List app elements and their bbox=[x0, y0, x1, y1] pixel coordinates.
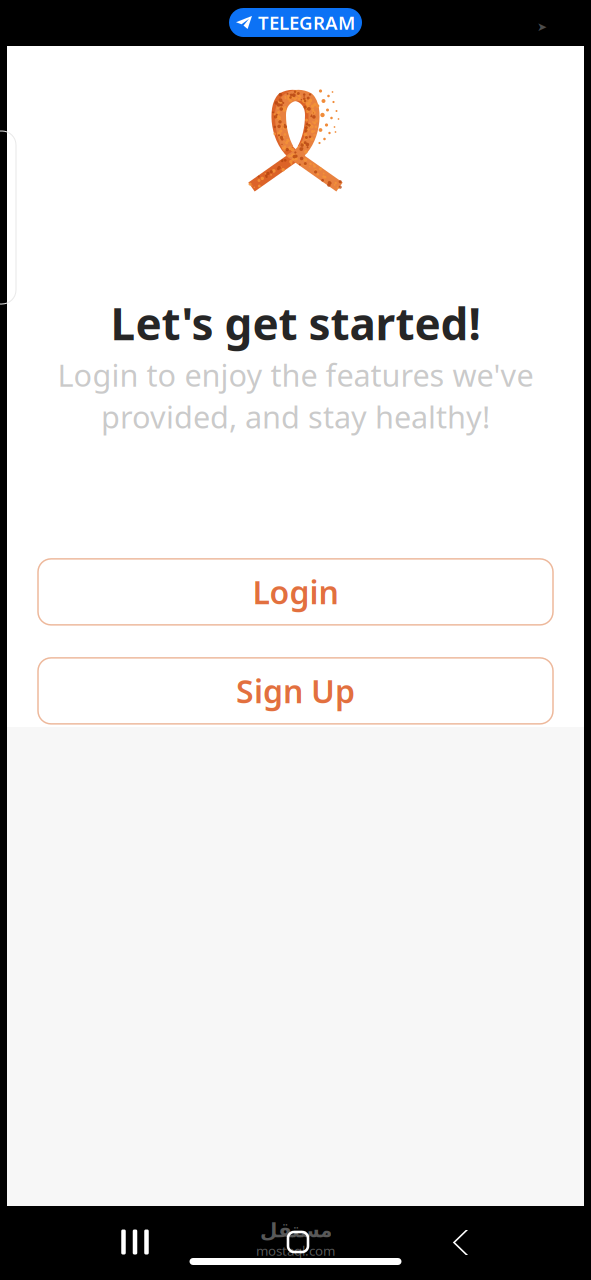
staticText: Sign Up bbox=[236, 670, 355, 712]
button[interactable]: Login bbox=[38, 559, 553, 625]
staticText: mostaql.com bbox=[256, 1242, 335, 1259]
button[interactable]: Home bbox=[253, 1223, 343, 1261]
staticText: Let's get started! bbox=[110, 294, 480, 352]
staticText: provided, and stay healthy! bbox=[101, 396, 490, 437]
button[interactable]: Recent apps bbox=[90, 1223, 180, 1261]
button[interactable]: Back bbox=[416, 1223, 506, 1261]
staticText: ➤ bbox=[537, 20, 547, 34]
staticText: مستقل bbox=[259, 1219, 331, 1242]
staticText: TELEGRAM bbox=[258, 10, 355, 35]
button[interactable]: TELEGRAM bbox=[229, 8, 362, 37]
staticText: Login to enjoy the features we've bbox=[57, 354, 533, 395]
button[interactable]: Sign Up bbox=[38, 658, 553, 724]
staticText: Login bbox=[252, 571, 338, 613]
